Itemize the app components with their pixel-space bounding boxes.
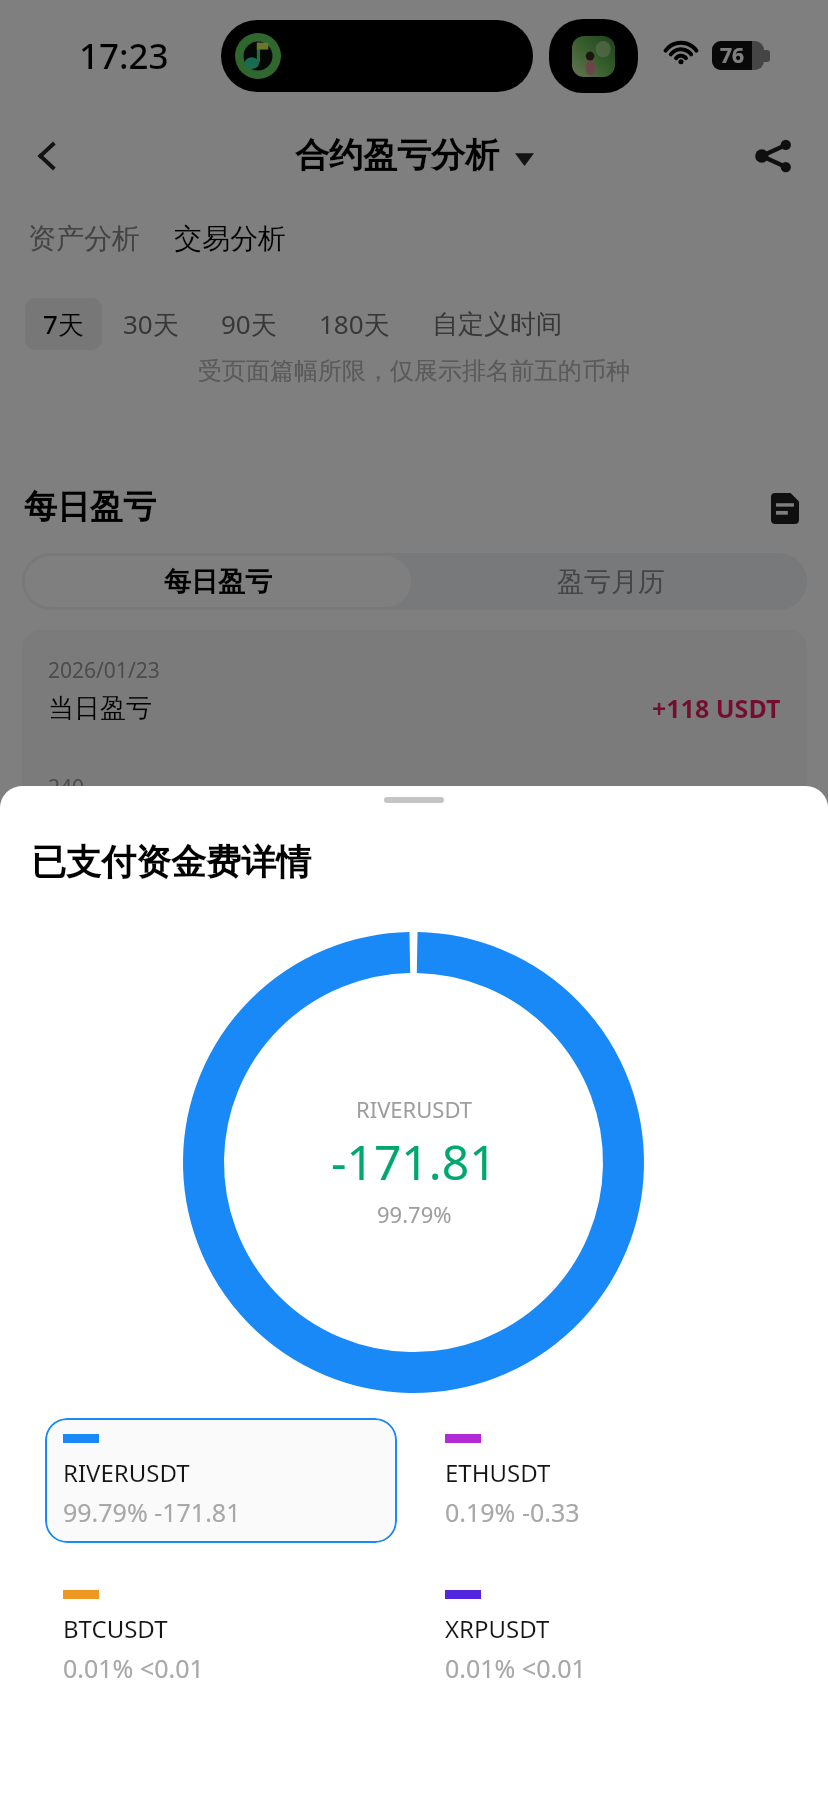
button[interactable]: 盈亏月历 xyxy=(414,553,807,610)
staticText: ETHUSDT xyxy=(445,1456,551,1489)
staticText: 合约盈亏分析 xyxy=(295,134,499,177)
staticText: RIVERUSDT xyxy=(356,1094,473,1124)
button[interactable]: Share xyxy=(744,126,804,186)
button[interactable]: Back xyxy=(18,128,74,184)
staticText: 盈亏月历 xyxy=(557,565,665,599)
button[interactable]: 180天 xyxy=(298,298,411,350)
staticText: 30天 xyxy=(123,306,179,342)
button[interactable] xyxy=(427,1418,779,1543)
staticText: 每日盈亏 xyxy=(24,486,156,528)
button[interactable] xyxy=(45,1418,397,1543)
button[interactable]: 7天 xyxy=(25,298,102,350)
staticText: 自定义时间 xyxy=(432,308,562,341)
staticText: 180天 xyxy=(319,306,390,342)
staticText: +118 USDT xyxy=(652,691,781,725)
staticText: 99.79% xyxy=(377,1199,452,1229)
button[interactable]: 2026/01/23 xyxy=(22,630,807,860)
button[interactable] xyxy=(45,1574,397,1699)
button[interactable]: 90天 xyxy=(200,298,298,350)
staticText: -171.81 xyxy=(331,1129,497,1194)
staticText: 17:23 xyxy=(79,32,169,80)
staticText: RIVERUSDT xyxy=(63,1456,190,1489)
button[interactable]: Report xyxy=(762,485,808,531)
staticText: BTCUSDT xyxy=(63,1612,168,1645)
staticText: 当日盈亏 xyxy=(48,692,152,725)
staticText: 受页面篇幅所限，仅展示排名前五的币种 xyxy=(0,356,828,386)
staticText: 2026/01/23 xyxy=(48,656,160,685)
staticText: 99.79% -171.81 xyxy=(63,1495,241,1529)
staticText: 240 xyxy=(48,773,85,802)
button[interactable]: 自定义时间 xyxy=(411,300,583,349)
button[interactable]: 合约盈亏分析 xyxy=(295,134,534,177)
staticText: 已支付资金费详情 xyxy=(31,840,311,884)
staticText: XRPUSDT xyxy=(445,1612,550,1645)
staticText: 7天 xyxy=(43,306,84,342)
button[interactable]: 资产分析 xyxy=(28,221,140,256)
staticText: 0.01% <0.01 xyxy=(445,1651,586,1685)
button[interactable] xyxy=(427,1574,779,1699)
staticText: 每日盈亏 xyxy=(164,565,272,599)
button[interactable]: 30天 xyxy=(102,298,200,350)
staticText: 76 xyxy=(720,41,745,70)
staticText: 90天 xyxy=(221,306,277,342)
staticText: 0.19% -0.33 xyxy=(445,1495,580,1529)
button[interactable]: 交易分析 xyxy=(174,221,286,256)
button[interactable]: 每日盈亏 xyxy=(25,556,411,607)
staticText: 0.01% <0.01 xyxy=(63,1651,204,1685)
